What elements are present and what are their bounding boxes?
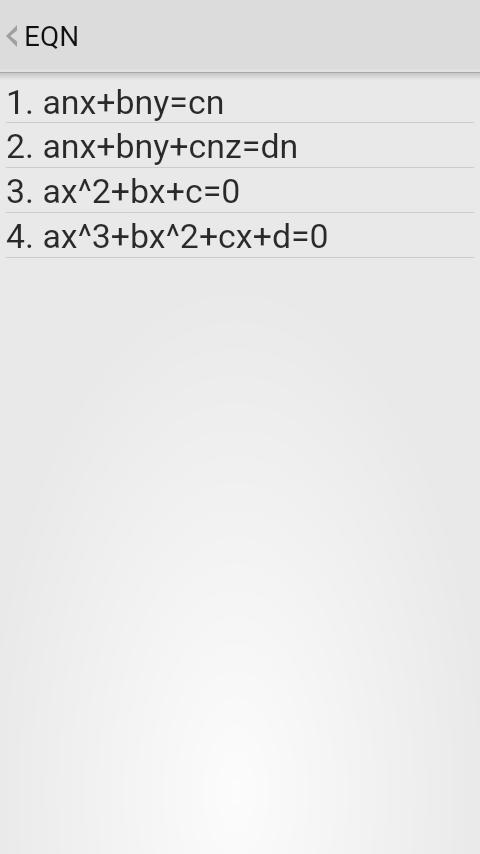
staticText: 1. anx+bny=cn	[6, 83, 225, 122]
button[interactable]: Back	[0, 0, 480, 72]
button[interactable]: 4. ax^3+bx^2+cx+d=0	[0, 213, 480, 257]
button[interactable]: 1. anx+bny=cn	[0, 73, 480, 122]
staticText: 4. ax^3+bx^2+cx+d=0	[6, 217, 329, 257]
staticText: EQN	[24, 20, 80, 53]
button[interactable]: 2. anx+bny+cnz=dn	[0, 123, 480, 167]
button[interactable]: 3. ax^2+bx+c=0	[0, 168, 480, 212]
staticText: 3. ax^2+bx+c=0	[6, 172, 241, 212]
staticText: 2. anx+bny+cnz=dn	[6, 127, 299, 167]
